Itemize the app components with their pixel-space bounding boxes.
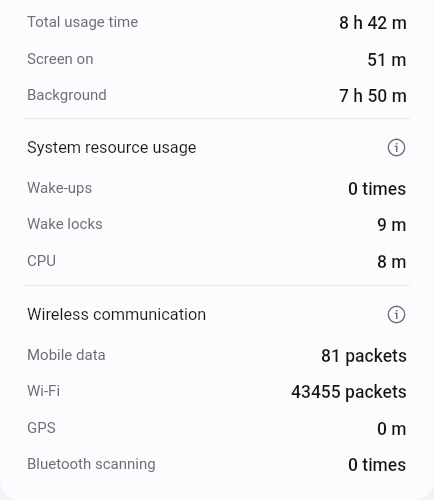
- button[interactable]: About Wireless communication: [381, 299, 411, 329]
- staticText: Wake-ups: [27, 179, 93, 197]
- staticText: 9 m: [377, 215, 407, 236]
- staticText: 8 m: [377, 252, 407, 273]
- staticText: 7 h 50 m: [339, 86, 407, 107]
- staticText: 0 m: [377, 419, 407, 440]
- button[interactable]: Background: [0, 77, 434, 113]
- staticText: 0 times: [348, 455, 407, 476]
- staticText: Wireless communication: [27, 305, 207, 324]
- staticText: Wake locks: [27, 215, 103, 233]
- button[interactable]: About System resource usage: [381, 132, 411, 162]
- staticText: Bluetooth scanning: [27, 455, 156, 473]
- staticText: Mobile data: [27, 346, 106, 364]
- staticText: 0 times: [348, 179, 407, 200]
- staticText: Screen on: [27, 50, 94, 68]
- staticText: 43455 packets: [291, 382, 407, 403]
- button[interactable]: Wi-Fi: [0, 373, 434, 409]
- staticText: Total usage time: [27, 13, 139, 31]
- staticText: 81 packets: [321, 346, 407, 367]
- button[interactable]: Screen on: [0, 41, 434, 77]
- staticText: Wi-Fi: [27, 382, 61, 400]
- button[interactable]: Total usage time: [0, 4, 434, 40]
- staticText: System resource usage: [27, 138, 197, 157]
- button[interactable]: CPU: [0, 243, 434, 279]
- staticText: Background: [27, 86, 107, 104]
- button[interactable]: Wake locks: [0, 206, 434, 242]
- button[interactable]: Mobile data: [0, 337, 434, 373]
- staticText: 51 m: [367, 50, 407, 71]
- staticText: 8 h 42 m: [339, 13, 407, 34]
- staticText: GPS: [27, 419, 56, 437]
- staticText: CPU: [27, 252, 56, 270]
- button[interactable]: GPS: [0, 410, 434, 446]
- button[interactable]: Wake-ups: [0, 170, 434, 206]
- button[interactable]: Bluetooth scanning: [0, 446, 434, 482]
